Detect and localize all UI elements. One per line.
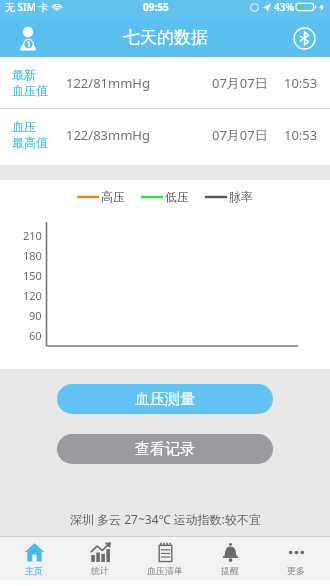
staticText: 提醒 xyxy=(221,565,239,576)
staticText: 07月07日 xyxy=(212,74,268,92)
button[interactable]: 查看记录 xyxy=(57,434,273,464)
staticText: 血压 xyxy=(12,119,36,134)
staticText: 查看记录 xyxy=(135,440,195,459)
staticText: 无 SIM 卡 xyxy=(5,0,49,14)
staticText: 43% xyxy=(274,0,294,14)
staticText: 210 xyxy=(23,228,42,243)
button[interactable]: 最新 xyxy=(0,57,330,108)
staticText: 血压测量 xyxy=(135,390,195,409)
button[interactable]: Bluetooth xyxy=(290,24,318,52)
staticText: 120 xyxy=(23,288,42,303)
staticText: 脉率 xyxy=(229,189,253,204)
staticText: 血压值 xyxy=(12,83,48,98)
staticText: 122/81mmHg xyxy=(66,74,150,92)
staticText: 60 xyxy=(29,328,42,343)
button[interactable]: 血压 xyxy=(0,109,330,160)
staticText: 更多 xyxy=(287,565,305,576)
staticText: 七天的数据 xyxy=(123,27,208,48)
staticText: 深圳 多云 27~34℃ 运动指数:较不宜 xyxy=(70,511,261,527)
staticText: 低压 xyxy=(165,189,189,204)
staticText: 09:55 xyxy=(143,0,169,14)
button[interactable]: 主页 xyxy=(3,537,65,580)
button[interactable]: User profile 1 xyxy=(14,24,42,52)
staticText: 150 xyxy=(23,268,42,283)
staticText: 07月07日 xyxy=(212,126,268,144)
staticText: 主页 xyxy=(25,565,43,576)
button[interactable]: 血压测量 xyxy=(57,384,273,414)
button[interactable]: 血压清单 xyxy=(134,537,196,580)
staticText: 10:53 xyxy=(284,74,320,92)
staticText: 最高值 xyxy=(12,135,48,150)
staticText: 最新 xyxy=(12,67,36,82)
staticText: 统计 xyxy=(91,565,109,576)
staticText: 180 xyxy=(23,248,42,263)
staticText: 90 xyxy=(29,308,42,323)
staticText: 10:53 xyxy=(284,126,320,144)
staticText: 高压 xyxy=(101,189,125,204)
staticText: 血压清单 xyxy=(147,565,183,576)
button[interactable]: 提醒 xyxy=(199,537,261,580)
button[interactable]: 统计 xyxy=(69,537,131,580)
staticText: 122/83mmHg xyxy=(66,126,150,144)
button[interactable]: 更多 xyxy=(265,537,327,580)
